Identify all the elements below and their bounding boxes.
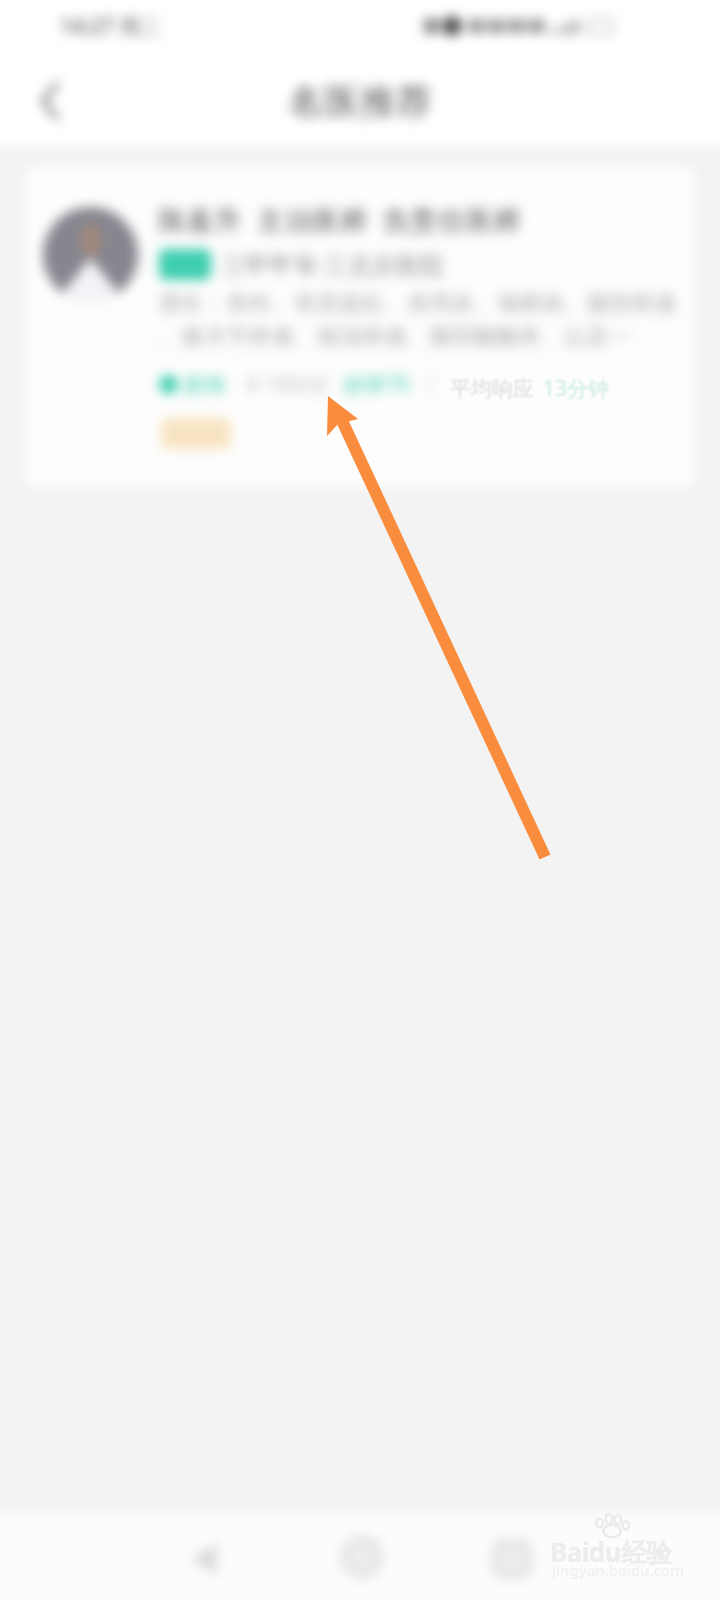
- staticText: 名医推荐: [288, 79, 432, 124]
- staticText: jingyan.baidu.com: [552, 1560, 685, 1580]
- staticText: 擅长：骨科、骨质疏松、肩周炎、颈椎病、腿部疼痛 、膝关节疼痛、颠顶疼痛、腿部酸酸…: [159, 289, 677, 350]
- staticText: 平均响应: [450, 376, 534, 402]
- staticText: Baidu经验: [550, 1534, 672, 1570]
- staticText: 14:27 周二: [60, 12, 162, 41]
- button[interactable]: Home: [332, 1527, 392, 1587]
- staticText: 咨询: [183, 372, 225, 398]
- button[interactable]: Back: [24, 75, 76, 127]
- staticText: ¥ 100/次: [247, 370, 330, 399]
- button[interactable]: Back: [175, 1529, 235, 1589]
- button[interactable]: Recents: [482, 1529, 542, 1589]
- staticText: 13分钟: [543, 374, 610, 403]
- staticText: 三甲甲等·三北京医院: [221, 248, 444, 281]
- staticText: 陈嘉升 主治医师 负责任医师: [159, 201, 521, 238]
- staticText: 好评75: [344, 370, 411, 399]
- button[interactable]: 陈嘉升 主治医师 负责任医师: [25, 167, 695, 487]
